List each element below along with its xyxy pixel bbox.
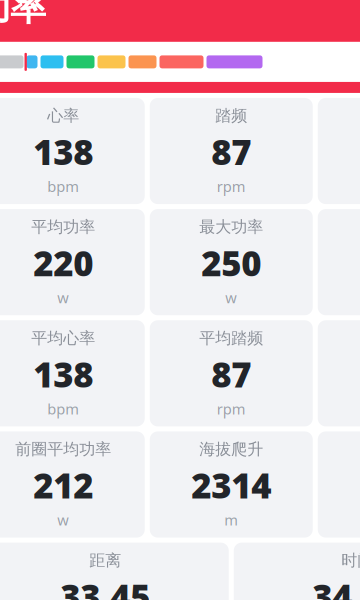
staticText: 心率 [47,106,79,126]
staticText: 踏频 [215,106,247,126]
staticText: rpm [217,177,246,196]
button[interactable]: 海拔爬升 [150,431,313,538]
staticText: w [57,288,69,307]
staticText: 138 [33,351,93,397]
staticText: w [57,510,69,530]
staticText: 2314 [191,462,271,508]
staticText: 距离 [89,551,121,570]
button[interactable]: 平均踏频 [150,320,313,426]
button[interactable]: 距离 [0,543,229,600]
staticText: 平均心率 [31,328,95,348]
staticText: bpm [47,399,79,418]
staticText: 87 [211,351,251,397]
staticText: 34.43 [312,573,360,600]
staticText: 33.45 [60,573,150,600]
button[interactable]: 踏频 [150,98,313,204]
staticText: 最大功率 [199,217,263,237]
button[interactable]: 时间 [234,543,360,600]
staticText: 平均功率 [31,217,95,237]
staticText: rpm [217,399,246,418]
staticText: 138 [33,129,93,175]
staticText: 平均踏频 [199,328,263,348]
button[interactable]: 前圈平均功率 [0,431,145,538]
staticText: 250 [201,240,261,286]
staticText: w [225,288,237,307]
button[interactable]: 心率 [0,98,145,204]
staticText: 海拔爬升 [199,439,263,459]
staticText: 时间 [341,551,360,570]
staticText: bpm [47,177,79,196]
staticText: 220 [33,240,93,286]
staticText: 87 [211,129,251,175]
staticText: m [224,510,238,530]
button[interactable]: 最大功率 [150,209,313,315]
button[interactable]: 平均心率 [0,320,145,426]
staticText: 212 [33,462,93,508]
staticText: 前圈平均功率 [15,439,111,459]
staticText: 功率 [0,0,46,30]
button[interactable]: 平均功率 [0,209,145,315]
